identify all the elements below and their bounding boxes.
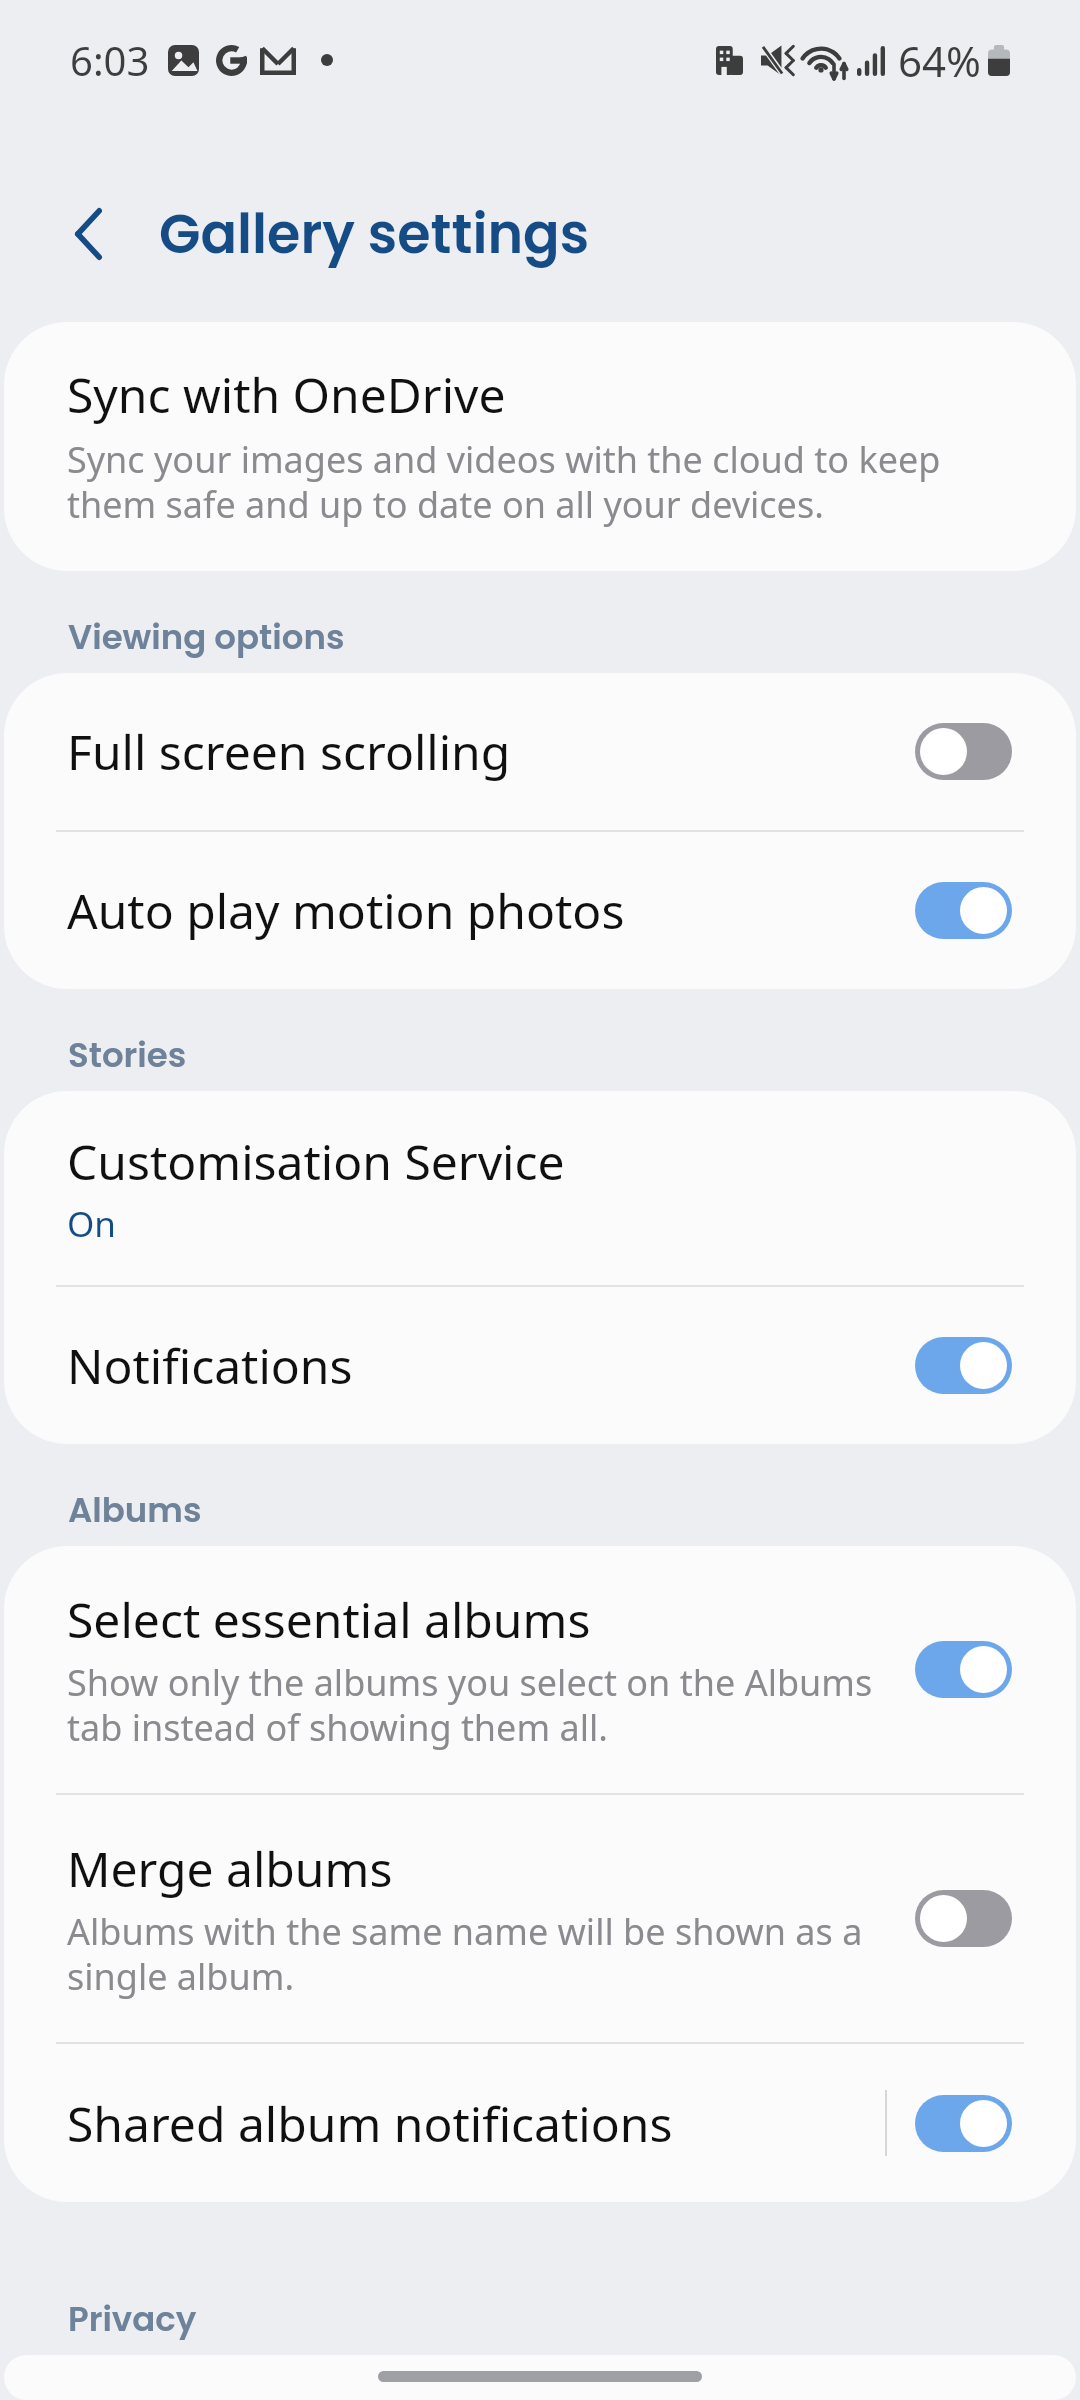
- staticText: Select essential albums: [67, 1587, 591, 1652]
- staticText: 6:03: [70, 33, 150, 87]
- button[interactable]: On: [915, 1641, 1012, 1698]
- staticText: Merge albums: [67, 1836, 393, 1901]
- staticText: Viewing options: [68, 613, 345, 661]
- staticText: Shared album notifications: [67, 2091, 673, 2156]
- staticText: Notifications: [67, 1333, 353, 1398]
- button[interactable]: Back: [51, 197, 125, 271]
- button[interactable]: Auto play motion photos: [4, 832, 1076, 989]
- staticText: On: [67, 1200, 116, 1248]
- staticText: Albums with the same name will be shown …: [67, 1907, 863, 2001]
- staticText: Privacy: [68, 2295, 197, 2343]
- staticText: Sync with OneDrive: [67, 362, 506, 427]
- button[interactable]: Off: [915, 1890, 1012, 1947]
- staticText: Albums: [68, 1486, 202, 1534]
- button[interactable]: On: [915, 882, 1012, 939]
- button[interactable]: Shared album notifications: [4, 2044, 1076, 2202]
- button[interactable]: Merge albums: [4, 1795, 1076, 2042]
- button[interactable]: On: [915, 2095, 1012, 2152]
- staticText: Auto play motion photos: [67, 878, 625, 943]
- button[interactable]: Select essential albums: [4, 1546, 1076, 1793]
- button[interactable]: Full screen scrolling: [4, 673, 1076, 830]
- button[interactable]: On: [915, 1337, 1012, 1394]
- staticText: Stories: [68, 1031, 187, 1079]
- staticText: Gallery settings: [159, 196, 590, 272]
- button[interactable]: Customisation Service: [4, 1091, 1076, 1285]
- staticText: Customisation Service: [67, 1129, 565, 1194]
- staticText: 64%: [898, 32, 981, 89]
- staticText: Full screen scrolling: [67, 719, 511, 784]
- button[interactable]: Sync with OneDrive: [4, 322, 1076, 571]
- button[interactable]: Notifications: [4, 1287, 1076, 1444]
- staticText: Show only the albums you select on the A…: [67, 1658, 873, 1752]
- staticText: Sync your images and videos with the clo…: [67, 435, 941, 529]
- button[interactable]: Off: [915, 723, 1012, 780]
